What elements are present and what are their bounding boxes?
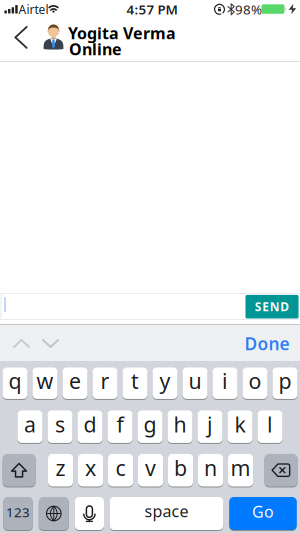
button[interactable]: Next keyboard (39, 496, 69, 530)
staticText: w (36, 366, 53, 395)
button[interactable]: e (62, 367, 88, 399)
staticText: 4:57 PM (126, 0, 177, 18)
button[interactable]: o (242, 367, 268, 399)
button[interactable]: h (167, 410, 193, 443)
button[interactable]: m (228, 453, 253, 487)
button[interactable]: u (182, 367, 208, 399)
staticText: Yogita Verma (68, 22, 176, 44)
staticText: n (204, 453, 217, 482)
button[interactable]: v (138, 453, 163, 487)
staticText: z (56, 453, 66, 482)
button[interactable]: Next field (36, 331, 64, 355)
button[interactable]: i (212, 367, 238, 399)
button[interactable]: t (122, 367, 148, 399)
staticText: space (144, 500, 188, 522)
staticText: q (8, 366, 21, 395)
button[interactable]: l (257, 410, 283, 443)
button[interactable]: q (2, 367, 28, 399)
staticText: m (231, 453, 251, 482)
button[interactable]: Shift (3, 453, 36, 487)
staticText: g (143, 410, 156, 438)
button[interactable]: Delete (264, 453, 297, 487)
button[interactable]: a (17, 410, 43, 443)
button[interactable]: g (137, 410, 163, 443)
staticText: o (248, 366, 261, 395)
staticText: l (267, 410, 273, 438)
staticText: 123 (6, 503, 30, 521)
staticText: t (131, 366, 139, 395)
button[interactable]: w (32, 367, 58, 399)
button[interactable]: c (108, 453, 133, 487)
button[interactable]: f (107, 410, 133, 443)
button[interactable]: j (197, 410, 223, 443)
staticText: r (100, 366, 109, 395)
staticText: y (159, 366, 170, 395)
staticText: b (174, 453, 187, 482)
staticText: SEND (255, 299, 289, 315)
button[interactable]: z (48, 453, 73, 487)
button[interactable]: x (78, 453, 103, 487)
staticText: p (278, 366, 291, 395)
staticText: e (69, 366, 81, 395)
staticText: f (116, 410, 123, 438)
staticText: Done (244, 332, 289, 355)
staticText: 98% (235, 0, 262, 18)
button[interactable]: Back (6, 21, 36, 53)
staticText: i (222, 366, 228, 395)
staticText: u (188, 366, 201, 395)
staticText: d (83, 410, 96, 438)
staticText: c (116, 453, 126, 482)
staticText: h (173, 410, 186, 438)
button[interactable]: Dictate (75, 496, 104, 530)
button[interactable]: k (227, 410, 253, 443)
staticText: Go (252, 501, 274, 522)
button[interactable]: SEND (245, 295, 298, 318)
button[interactable]: Previous field (7, 331, 35, 355)
button[interactable]: b (168, 453, 193, 487)
staticText: j (207, 410, 213, 438)
staticText: Airtel (18, 1, 48, 17)
button[interactable]: Done (244, 331, 289, 355)
button[interactable]: d (77, 410, 103, 443)
staticText: a (24, 410, 36, 438)
button[interactable]: space (110, 496, 223, 530)
button[interactable]: r (92, 367, 118, 399)
staticText: s (55, 410, 65, 438)
staticText: v (145, 453, 156, 482)
button[interactable]: n (198, 453, 223, 487)
staticText: Online (69, 38, 122, 60)
staticText: x (85, 453, 96, 482)
button[interactable]: y (152, 367, 178, 399)
button[interactable]: s (47, 410, 73, 443)
button[interactable]: Numbers (3, 496, 33, 530)
button[interactable]: Go (229, 496, 297, 530)
button[interactable]: p (272, 367, 298, 399)
staticText: k (234, 410, 245, 438)
